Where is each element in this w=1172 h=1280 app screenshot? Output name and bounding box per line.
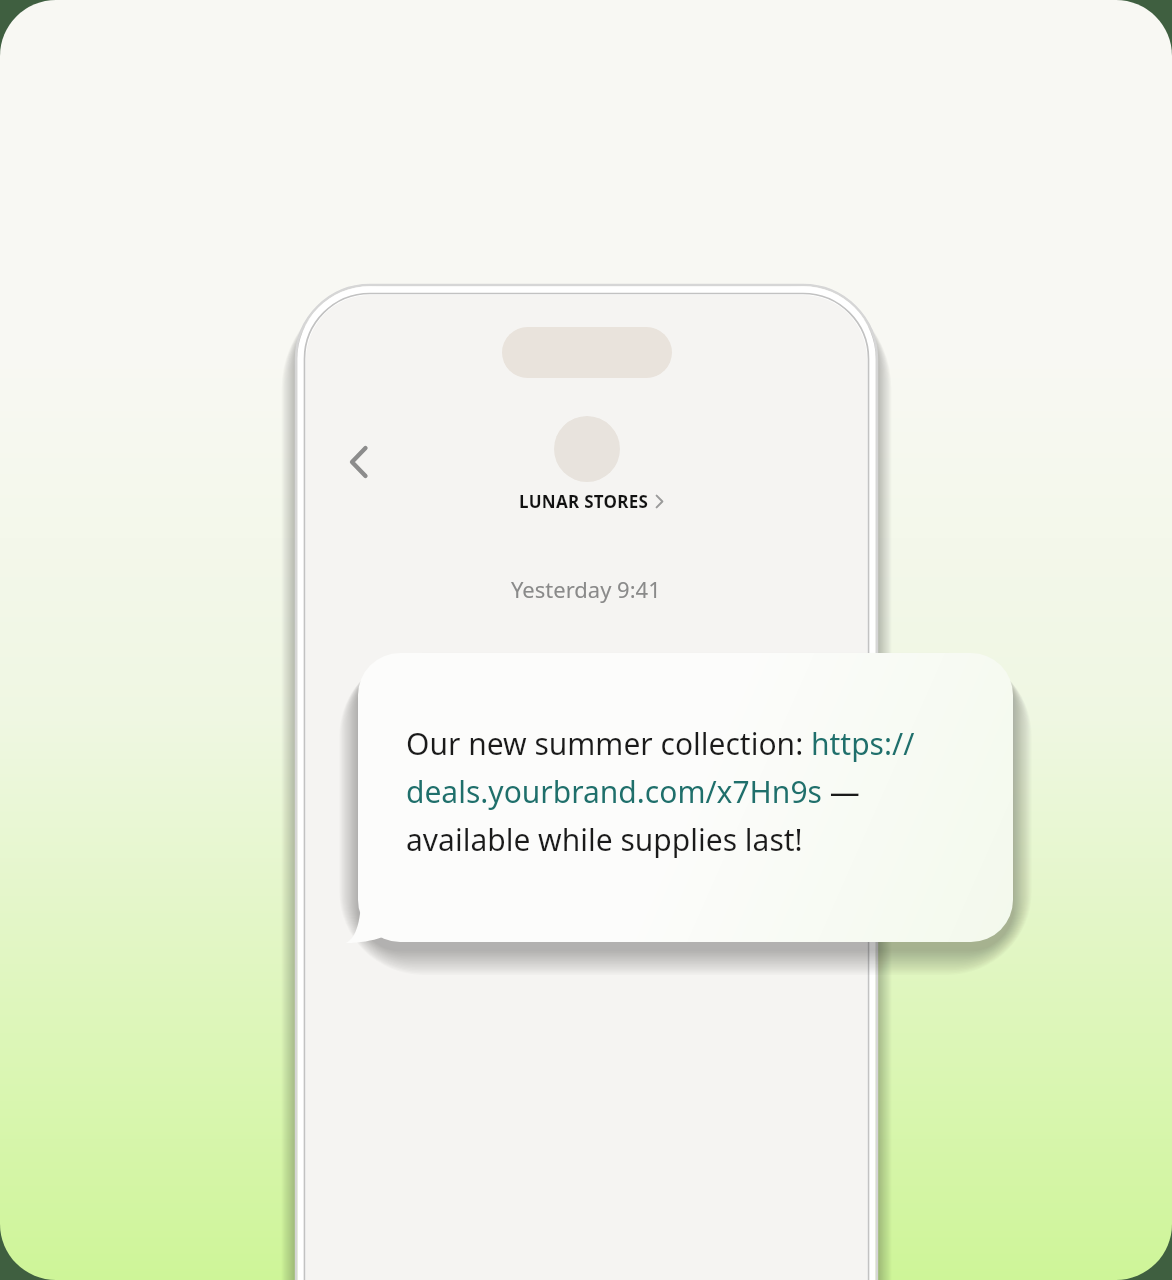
button[interactable]: Our new summer collection: https://deals… (406, 723, 962, 859)
button[interactable]: LUNAR STORES (516, 488, 667, 515)
staticText: Yesterday 9:41 (511, 574, 661, 604)
button[interactable]: Back (330, 434, 386, 490)
staticText: LUNAR STORES (519, 490, 649, 513)
